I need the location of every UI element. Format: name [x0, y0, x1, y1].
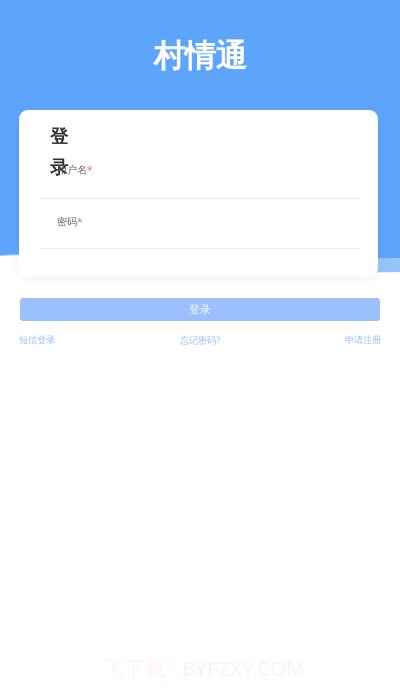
button[interactable]: 密码: [40, 206, 360, 247]
staticText: 村情通: [153, 36, 246, 76]
staticText: 登录: [189, 303, 211, 316]
button[interactable]: 用户名: [40, 156, 360, 194]
staticText: 忘记密码?: [180, 334, 220, 346]
button[interactable]: 申请注册: [345, 334, 381, 346]
staticText: 飞下载 · BYFZXY.COM: [103, 654, 305, 682]
staticText: *: [77, 215, 83, 229]
staticText: 申请注册: [345, 334, 381, 346]
staticText: *: [87, 163, 93, 177]
staticText: 短信登录: [19, 334, 55, 346]
button[interactable]: 短信登录: [19, 334, 55, 346]
staticText: 登: [50, 125, 68, 148]
staticText: 用户名: [57, 163, 87, 176]
button[interactable]: 登录: [20, 298, 380, 321]
staticText: 密码: [57, 215, 77, 228]
staticText: 录: [50, 156, 68, 179]
button[interactable]: 忘记密码?: [180, 334, 220, 346]
